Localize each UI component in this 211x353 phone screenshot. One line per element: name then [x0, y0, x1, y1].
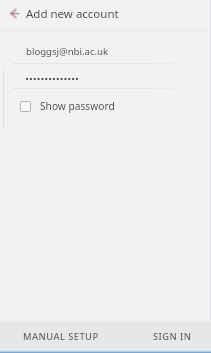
staticText: Add new account — [26, 6, 119, 22]
button[interactable]: Show password — [16, 96, 121, 116]
button[interactable]: Back — [3, 1, 27, 25]
button[interactable]: MANUAL SETUP — [14, 320, 108, 352]
staticText: bloggsj@nbi.ac.uk — [26, 45, 109, 58]
button[interactable]: SIGN IN — [144, 320, 201, 352]
staticText: Show password — [40, 99, 115, 113]
